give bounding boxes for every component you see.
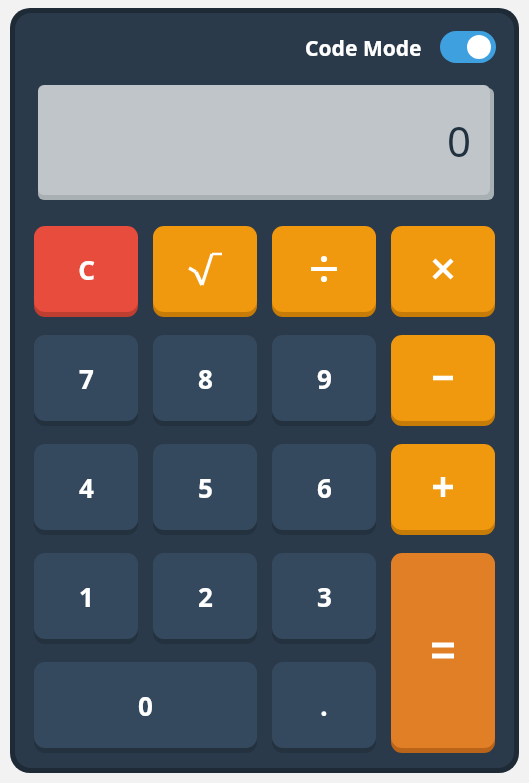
button[interactable]: 3 [272, 553, 376, 639]
button[interactable]: 0 [34, 662, 257, 748]
button[interactable]: C [34, 226, 138, 312]
button[interactable]: Multiply [391, 226, 495, 312]
button[interactable]: 9 [272, 335, 376, 421]
staticText: 0 [447, 112, 472, 169]
staticText: 1 [79, 579, 94, 614]
staticText: 3 [317, 579, 332, 614]
button[interactable]: 4 [34, 444, 138, 530]
button[interactable]: 2 [153, 553, 257, 639]
button[interactable]: 7 [34, 335, 138, 421]
button[interactable]: Minus [391, 335, 495, 421]
button[interactable]: 5 [153, 444, 257, 530]
button[interactable]: Divide [272, 226, 376, 312]
staticText: 9 [317, 361, 332, 396]
button[interactable]: . [272, 662, 376, 748]
button[interactable]: Code Mode toggle, on [440, 31, 496, 63]
button[interactable]: 1 [34, 553, 138, 639]
staticText: 8 [198, 361, 213, 396]
staticText: 6 [317, 470, 332, 505]
staticText: C [78, 252, 95, 287]
button[interactable]: Square root [153, 226, 257, 312]
button[interactable]: Equals [391, 553, 495, 748]
staticText: 5 [198, 470, 213, 505]
button[interactable]: 8 [153, 335, 257, 421]
staticText: 0 [138, 688, 153, 723]
staticText: . [320, 688, 328, 723]
button[interactable]: 6 [272, 444, 376, 530]
button[interactable]: Code Mode [305, 32, 495, 64]
staticText: 4 [79, 470, 94, 505]
button[interactable]: Plus [391, 444, 495, 530]
staticText: 2 [198, 579, 213, 614]
staticText: Code Mode [305, 34, 422, 63]
staticText: 7 [79, 361, 94, 396]
